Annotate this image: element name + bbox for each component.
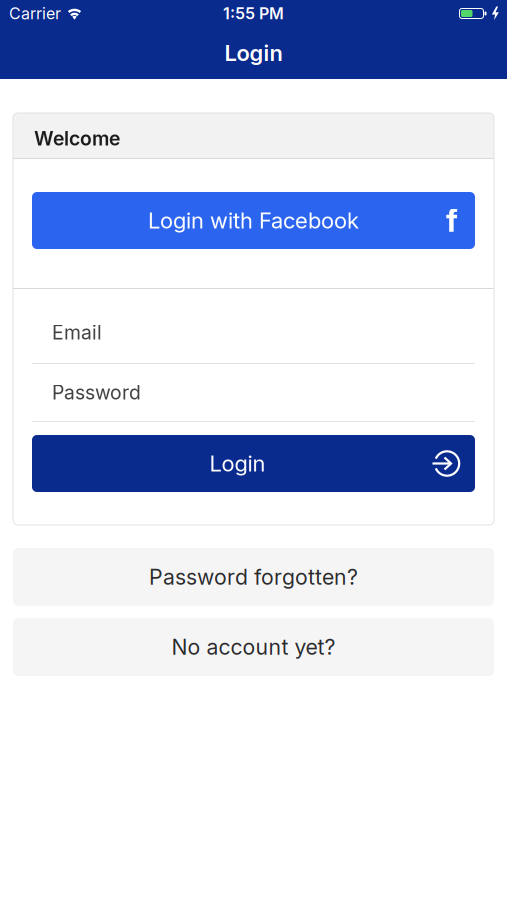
staticText: Carrier <box>9 4 61 23</box>
staticText: Email <box>52 321 102 344</box>
staticText: 1:55 PM <box>223 4 284 23</box>
button[interactable]: Password forgotten? <box>13 548 494 606</box>
staticText: f <box>446 202 458 239</box>
staticText: Login with Facebook <box>148 207 359 234</box>
button[interactable]: Login <box>32 435 475 492</box>
staticText: Welcome <box>34 127 120 150</box>
button[interactable]: No account yet? <box>13 618 494 676</box>
staticText: Password forgotten? <box>149 564 358 590</box>
staticText: Password <box>52 381 141 404</box>
staticText: Login <box>209 450 265 477</box>
staticText: No account yet? <box>171 634 335 660</box>
staticText: Login <box>224 40 282 66</box>
button[interactable]: Login with Facebook <box>32 192 475 249</box>
